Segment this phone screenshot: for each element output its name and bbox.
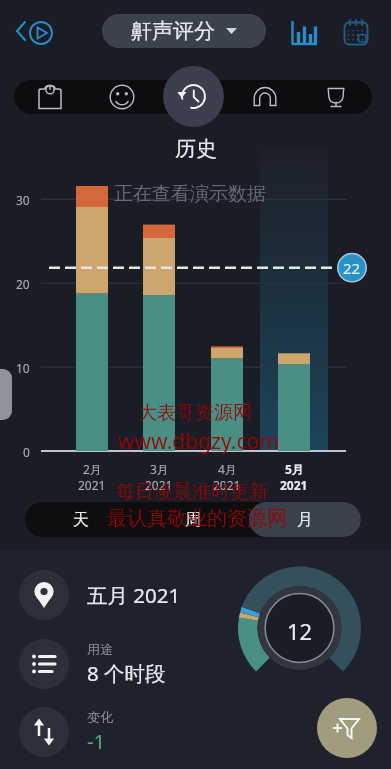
staticText: 2021: [145, 477, 173, 493]
button[interactable]: Statistics: [290, 19, 320, 49]
button[interactable]: Drinks: [300, 80, 372, 114]
staticText: 周: [185, 510, 201, 530]
button[interactable]: 月: [249, 502, 361, 537]
staticText: 天: [73, 510, 89, 530]
staticText: 20: [16, 276, 30, 292]
staticText: 最认真敬业的资源网: [107, 506, 287, 531]
button[interactable]: Weight: [14, 80, 86, 114]
staticText: 30: [16, 192, 30, 208]
button[interactable]: Add filter: [317, 698, 377, 758]
button[interactable]: 周: [137, 502, 249, 537]
staticText: 每日凌晨准时更新: [116, 480, 268, 504]
staticText: 2月: [83, 461, 102, 477]
staticText: 用途: [87, 641, 113, 657]
button[interactable]: 天: [25, 502, 137, 537]
staticText: 月: [297, 510, 313, 530]
staticText: 大表哥资源网: [138, 401, 252, 425]
staticText: 历史: [175, 136, 217, 162]
staticText: 3月: [150, 461, 169, 477]
staticText: 鼾声评分: [131, 18, 215, 44]
staticText: 8 个时段: [87, 659, 166, 687]
staticText: -1: [87, 727, 106, 755]
staticText: 4月: [218, 461, 237, 477]
staticText: 五月 2021: [87, 581, 181, 609]
staticText: 2021: [280, 477, 308, 493]
staticText: 22: [343, 258, 361, 278]
staticText: 正在查看演示数据: [114, 182, 266, 206]
button[interactable]: 鼾声评分: [102, 14, 266, 48]
staticText: 5月: [285, 461, 304, 477]
staticText: 10: [16, 360, 30, 376]
button[interactable]: Mood: [86, 80, 158, 114]
staticText: 2021: [213, 477, 241, 493]
button[interactable]: Calendar: [342, 19, 372, 49]
button[interactable]: 变化: [19, 703, 259, 761]
button[interactable]: Sleep: [229, 80, 301, 114]
staticText: www.dbgzy.com: [118, 427, 279, 456]
button[interactable]: History tab: [163, 66, 224, 127]
button[interactable]: 五月 2021: [19, 566, 259, 624]
button[interactable]: 用途: [19, 635, 259, 693]
button[interactable]: Play demo: [10, 14, 56, 48]
staticText: 12: [287, 616, 313, 646]
staticText: 变化: [87, 709, 113, 725]
staticText: 2021: [78, 477, 106, 493]
staticText: 0: [23, 444, 30, 460]
